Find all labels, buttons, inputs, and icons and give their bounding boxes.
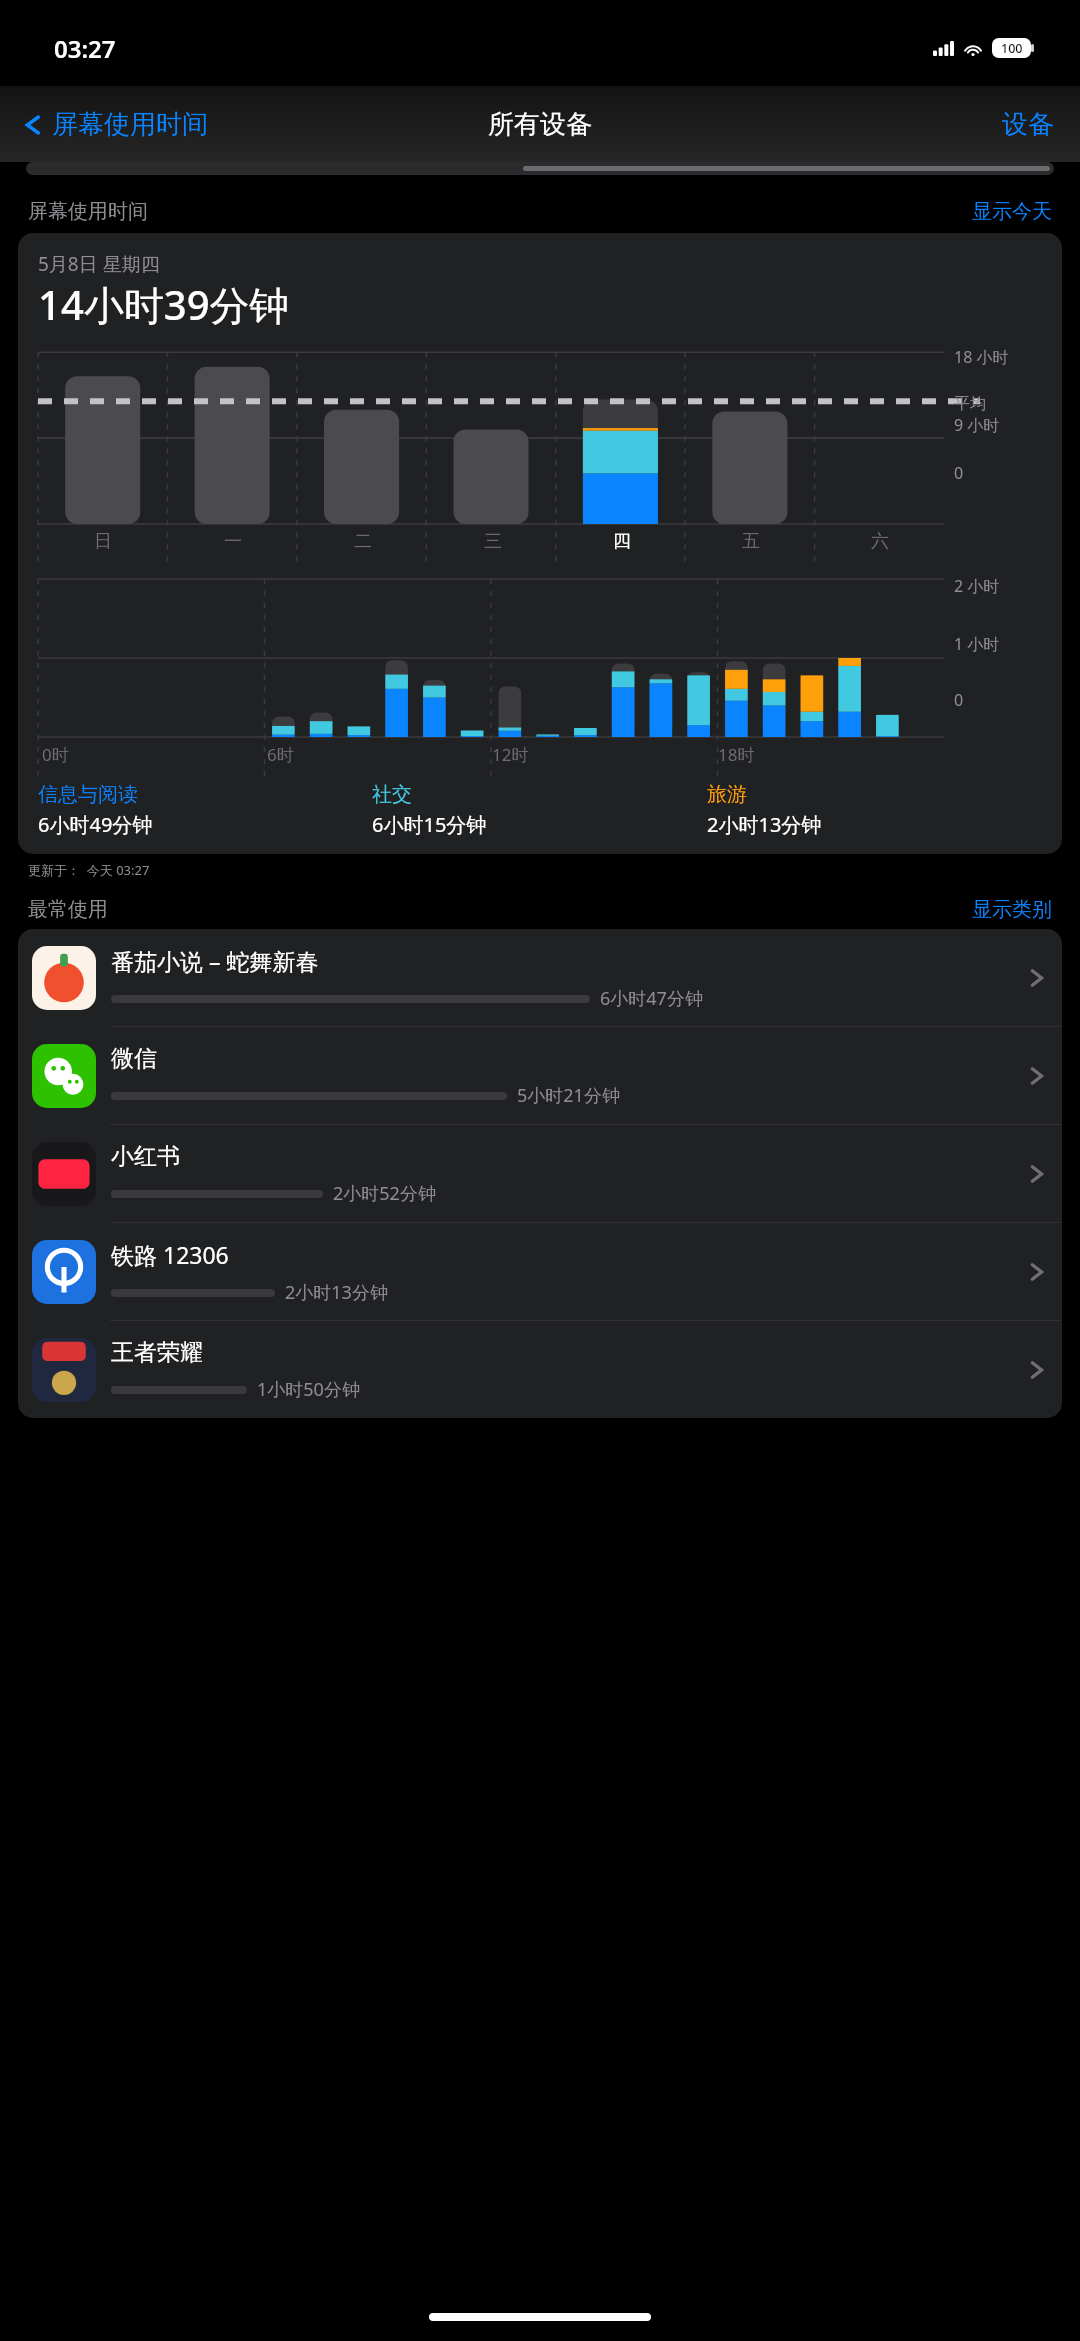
button[interactable]: 铁路 12306 [18, 1223, 1062, 1320]
staticText: 平均 [954, 394, 986, 414]
staticText: 0 [954, 462, 964, 484]
staticText: 微信 [111, 1044, 157, 1073]
other: 查看详情 [1029, 965, 1044, 991]
button[interactable]: 显示类别 [972, 897, 1052, 922]
staticText: 显示类别 [972, 897, 1052, 922]
button[interactable]: 显示今天 [972, 199, 1052, 224]
staticText: 五 [742, 530, 760, 553]
staticText: 社交 [372, 782, 412, 807]
staticText: 小红书 [111, 1142, 180, 1171]
staticText: 03:27 [54, 32, 116, 65]
staticText: 六 [871, 530, 889, 553]
staticText: 更新于： 今天 03:27 [28, 861, 150, 879]
staticText: 1小时50分钟 [257, 1377, 360, 1402]
staticText: 王者荣耀 [111, 1338, 203, 1367]
button[interactable]: 屏幕使用时间 [20, 100, 212, 149]
other: 查看详情 [1029, 1161, 1044, 1187]
staticText: 设备 [1002, 108, 1054, 141]
staticText: 1 小时 [954, 633, 1000, 655]
staticText: 显示今天 [972, 199, 1052, 224]
staticText: 2小时13分钟 [285, 1280, 388, 1305]
staticText: 100 [1001, 40, 1023, 57]
button[interactable]: 旅游 [707, 782, 1042, 838]
staticText: 18时 [718, 743, 755, 766]
staticText: 18 小时 [954, 346, 1009, 368]
other: 查看详情 [1029, 1357, 1044, 1383]
staticText: 6小时47分钟 [600, 986, 703, 1011]
staticText: 信息与阅读 [38, 782, 138, 807]
staticText: 三 [484, 530, 502, 553]
staticText: 0时 [42, 743, 69, 766]
staticText: 5月8日 星期四 [38, 251, 160, 277]
staticText: 二 [354, 530, 372, 553]
other: 查看详情 [1029, 1259, 1044, 1285]
staticText: 最常使用 [28, 897, 108, 922]
staticText: 2小时13分钟 [707, 811, 822, 838]
staticText: 2小时52分钟 [333, 1181, 436, 1206]
staticText: 四 [613, 530, 631, 553]
staticText: 番茄小说 – 蛇舞新春 [111, 945, 319, 976]
button[interactable]: 社交 [372, 782, 707, 838]
staticText: 6小时49分钟 [38, 811, 153, 838]
staticText: 旅游 [707, 782, 747, 807]
staticText: 9 小时 [954, 414, 1000, 436]
staticText: 屏幕使用时间 [28, 199, 148, 224]
staticText: 6时 [267, 743, 294, 766]
button[interactable]: 王者荣耀 [18, 1321, 1062, 1418]
staticText: 6小时15分钟 [372, 811, 487, 838]
staticText: 一 [224, 530, 242, 553]
button[interactable]: 小红书 [18, 1125, 1062, 1222]
staticText: 5小时21分钟 [517, 1083, 620, 1108]
button[interactable]: 番茄小说 – 蛇舞新春 [18, 929, 1062, 1026]
staticText: 铁路 12306 [111, 1239, 229, 1270]
staticText: 所有设备 [488, 108, 592, 141]
staticText: 2 小时 [954, 575, 1000, 597]
staticText: 0 [954, 689, 964, 711]
staticText: 屏幕使用时间 [52, 108, 208, 141]
button[interactable]: 设备 [998, 100, 1058, 149]
button[interactable]: 5月8日 星期四 [18, 233, 1062, 854]
staticText: 12时 [492, 743, 529, 766]
button[interactable]: 信息与阅读 [38, 782, 372, 838]
staticText: 14小时39分钟 [38, 277, 290, 332]
staticText: 日 [94, 530, 112, 553]
button[interactable]: 微信 [18, 1027, 1062, 1124]
other: 查看详情 [1029, 1063, 1044, 1089]
